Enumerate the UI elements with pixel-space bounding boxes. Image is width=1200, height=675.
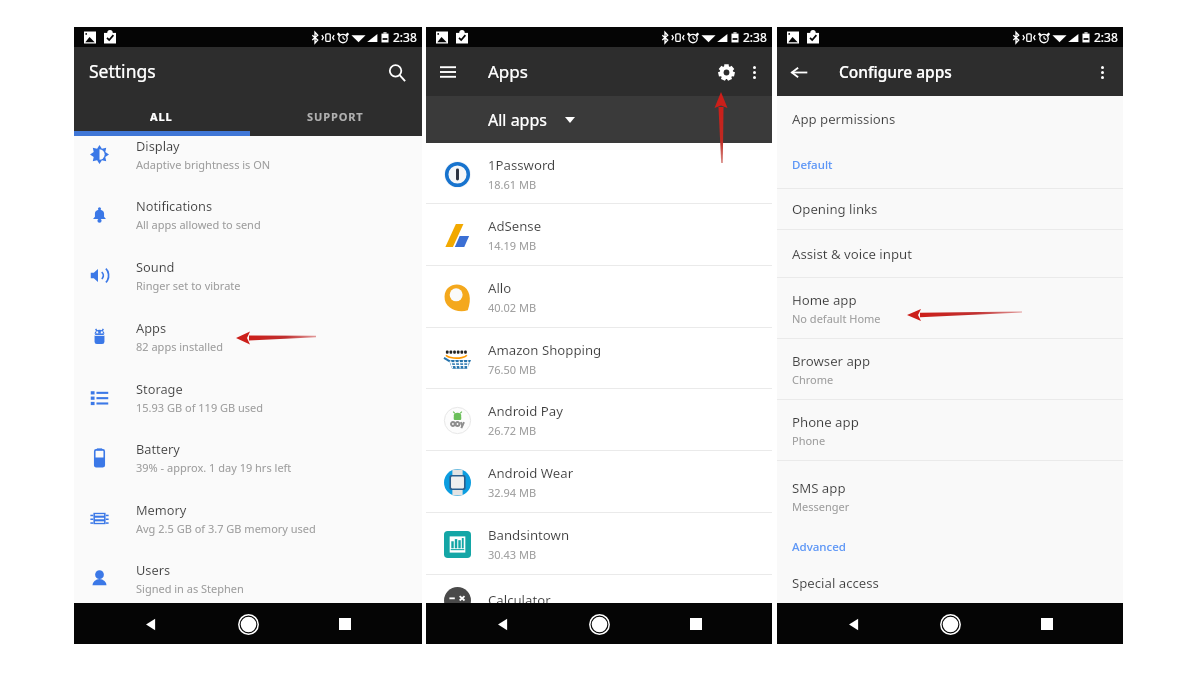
staticText: Advanced xyxy=(792,539,846,555)
staticText: Bandsintown xyxy=(488,526,570,544)
button[interactable]: 1Password xyxy=(426,144,772,204)
button[interactable]: Settings xyxy=(711,57,741,87)
button[interactable]: App permissions xyxy=(777,96,1123,141)
button[interactable]: Search xyxy=(383,59,411,87)
staticText: Chrome xyxy=(792,372,834,387)
button[interactable]: Apps xyxy=(74,306,422,366)
staticText: App permissions xyxy=(792,110,896,128)
staticText: Android Pay xyxy=(488,402,563,420)
staticText: Settings xyxy=(89,59,156,83)
staticText: Browser app xyxy=(792,352,871,370)
staticText: 40.02 MB xyxy=(488,300,537,315)
button[interactable]: Android Pay xyxy=(426,390,772,450)
button[interactable]: Recent apps xyxy=(325,604,365,644)
button[interactable]: Sound xyxy=(74,245,422,305)
button[interactable]: Amazon Shopping xyxy=(426,329,772,389)
staticText: Assist & voice input xyxy=(792,245,912,263)
staticText: SMS app xyxy=(792,479,846,497)
staticText: Allo xyxy=(488,279,512,297)
staticText: 2:38 xyxy=(743,29,767,45)
staticText: Messenger xyxy=(792,499,850,514)
button[interactable]: Back xyxy=(834,604,874,644)
staticText: Opening links xyxy=(792,200,878,218)
staticText: SUPPORT xyxy=(307,109,364,124)
button[interactable]: Browser app xyxy=(777,339,1123,399)
staticText: Memory xyxy=(136,501,187,518)
staticText: All apps allowed to send xyxy=(136,217,261,232)
staticText: 14.19 MB xyxy=(488,238,537,253)
staticText: 26.72 MB xyxy=(488,423,537,438)
staticText: Storage xyxy=(136,380,183,397)
button[interactable]: Recent apps xyxy=(676,604,716,644)
staticText: 39% - approx. 1 day 19 hrs left xyxy=(136,460,292,475)
staticText: 1Password xyxy=(488,156,556,174)
staticText: Avg 2.5 GB of 3.7 GB memory used xyxy=(136,521,316,536)
staticText: Phone app xyxy=(792,413,859,431)
button[interactable]: Back xyxy=(483,604,523,644)
staticText: Android Wear xyxy=(488,464,574,482)
staticText: 15.93 GB of 119 GB used xyxy=(136,400,264,415)
button[interactable]: Phone app xyxy=(777,400,1123,460)
button[interactable]: Home xyxy=(930,604,970,644)
button[interactable]: AdSense xyxy=(426,205,772,265)
staticText: Default xyxy=(792,157,833,173)
button[interactable]: Back xyxy=(131,604,171,644)
button[interactable]: All apps xyxy=(488,109,575,131)
staticText: ALL xyxy=(150,109,173,124)
button[interactable]: More options xyxy=(1089,59,1115,85)
button[interactable]: Open navigation drawer xyxy=(433,57,463,87)
staticText: Amazon Shopping xyxy=(488,341,602,359)
staticText: 30.43 MB xyxy=(488,547,537,562)
staticText: Special access xyxy=(792,574,879,592)
staticText: 2:38 xyxy=(393,29,417,45)
button[interactable]: Display xyxy=(74,136,422,184)
staticText: Sound xyxy=(136,258,175,275)
staticText: Display xyxy=(136,137,180,154)
button[interactable]: Users xyxy=(74,548,422,603)
button[interactable]: Battery xyxy=(74,427,422,487)
staticText: AdSense xyxy=(488,217,542,235)
button[interactable]: Storage xyxy=(74,367,422,427)
button[interactable]: Opening links xyxy=(777,189,1123,229)
button[interactable]: Home xyxy=(579,604,619,644)
staticText: Configure apps xyxy=(839,61,952,82)
button[interactable]: Bandsintown xyxy=(426,514,772,574)
staticText: Notifications xyxy=(136,197,213,214)
button[interactable]: Calculator xyxy=(426,570,772,630)
button[interactable]: Android Wear xyxy=(426,452,772,512)
button[interactable]: Allo xyxy=(426,267,772,327)
staticText: All apps xyxy=(488,109,547,131)
staticText: 32.94 MB xyxy=(488,485,537,500)
staticText: 76.50 MB xyxy=(488,362,537,377)
button[interactable]: Notifications xyxy=(74,184,422,244)
button[interactable]: Special access xyxy=(777,563,1123,603)
staticText: Apps xyxy=(136,319,167,336)
staticText: No default Home xyxy=(792,311,881,326)
button[interactable]: Assist & voice input xyxy=(777,230,1123,277)
staticText: Phone xyxy=(792,433,826,448)
staticText: Adaptive brightness is ON xyxy=(136,157,271,172)
staticText: Ringer set to vibrate xyxy=(136,278,241,293)
staticText: Calculator xyxy=(488,591,551,609)
button[interactable]: Home xyxy=(228,604,268,644)
button[interactable]: SMS app xyxy=(777,461,1123,531)
staticText: Apps xyxy=(488,60,528,83)
staticText: Signed in as Stephen xyxy=(136,581,244,596)
staticText: Home app xyxy=(792,291,857,309)
button[interactable]: Home app xyxy=(777,278,1123,338)
button[interactable]: Recent apps xyxy=(1027,604,1067,644)
staticText: Users xyxy=(136,561,171,578)
button[interactable]: Memory xyxy=(74,488,422,548)
button[interactable]: Navigate up xyxy=(784,57,814,87)
staticText: 18.61 MB xyxy=(488,177,537,192)
staticText: 2:38 xyxy=(1094,29,1118,45)
staticText: 82 apps installed xyxy=(136,339,223,354)
button[interactable]: SUPPORT xyxy=(248,95,422,136)
staticText: Battery xyxy=(136,440,180,457)
button[interactable]: More options xyxy=(741,59,767,85)
button[interactable]: ALL xyxy=(74,95,248,136)
